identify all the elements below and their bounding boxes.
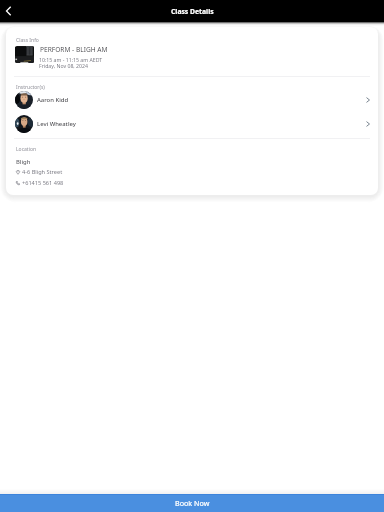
staticText: +61415 561 498 [22, 179, 64, 187]
button[interactable]: Book Now [0, 494, 384, 512]
staticText: Class Details [171, 7, 214, 16]
staticText: Instructor(s) [16, 84, 45, 91]
staticText: Book Now [175, 498, 210, 508]
staticText: 10:15 am - 11:15 am AEDT [39, 56, 103, 63]
button[interactable]: +61415 561 498 [15, 179, 64, 187]
staticText: Friday, Nov 08, 2024 [39, 62, 88, 69]
button[interactable]: 4-6 Bligh Street [15, 168, 63, 176]
button[interactable]: Back [0, 0, 22, 22]
staticText: PERFORM - BLIGH AM [40, 45, 108, 54]
button[interactable]: Levi Wheatley [6, 112, 378, 136]
staticText: Bligh [16, 158, 31, 166]
staticText: Levi Wheatley [37, 120, 76, 128]
staticText: Aaron Kidd [37, 96, 69, 104]
staticText: Location [16, 146, 37, 153]
staticText: 4-6 Bligh Street [22, 168, 63, 176]
button[interactable]: Aaron Kidd [6, 88, 378, 112]
staticText: Class Info [16, 37, 39, 44]
